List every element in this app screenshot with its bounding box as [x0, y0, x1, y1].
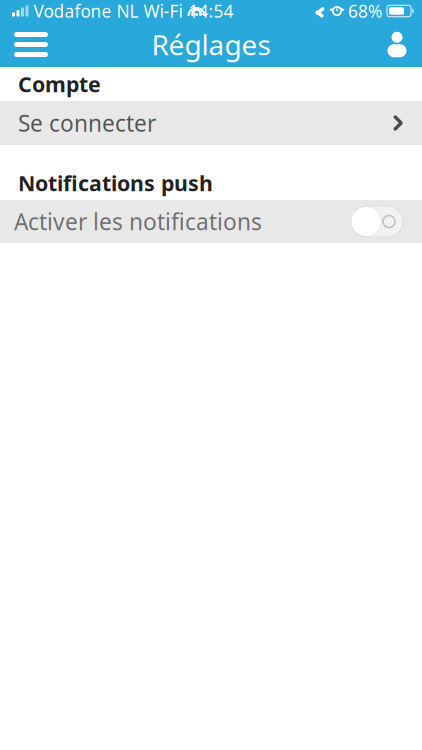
button[interactable]: Activer les notifications — [0, 200, 422, 243]
staticText: Se connecter — [18, 108, 156, 138]
staticText: Activer les notifications — [14, 206, 262, 236]
staticText: Vodafone NL Wi-Fi — [33, 0, 182, 22]
staticText: Notifications push — [18, 169, 213, 197]
staticText: Compte — [18, 70, 101, 98]
staticText: 68% — [348, 0, 382, 22]
staticText: 14:54 — [188, 0, 233, 22]
button[interactable]: Menu — [0, 22, 62, 67]
button[interactable]: Se connecter — [0, 101, 422, 145]
button[interactable]: Account — [372, 23, 422, 66]
staticText: Réglages — [151, 26, 270, 63]
